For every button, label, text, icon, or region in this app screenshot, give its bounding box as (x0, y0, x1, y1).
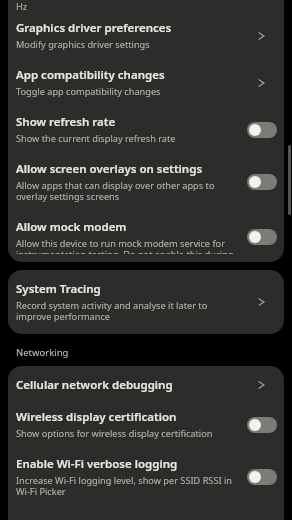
other: Open System Tracing (255, 295, 269, 309)
other: Open graphics driver preferences (255, 29, 269, 43)
staticText: Record system activity and analyse it la… (16, 299, 239, 323)
staticText: Toggle app compatibility changes (16, 85, 161, 98)
staticText: Graphics driver preferences (16, 20, 172, 36)
staticText: Wireless display certification (16, 409, 177, 425)
button[interactable]: System Tracing (8, 270, 284, 334)
staticText: Allow apps that can display over other a… (16, 179, 239, 203)
staticText: Show refresh rate (16, 114, 116, 130)
staticText: App compatibility changes (16, 67, 165, 83)
staticText: Show the current display refresh rate (16, 132, 176, 145)
staticText: Allow screen overlays on settings (16, 161, 203, 177)
other: Open cellular network debugging (255, 378, 269, 392)
button[interactable]: Show refresh rate (8, 106, 284, 153)
other: Open app compatibility changes (255, 76, 269, 90)
staticText: Cellular network debugging (16, 377, 173, 393)
button[interactable]: Off (247, 229, 277, 245)
button[interactable]: Wireless display certification (8, 402, 284, 448)
button[interactable]: Off (247, 417, 277, 433)
staticText: Enable Wi-Fi verbose logging (16, 456, 178, 472)
staticText: Hz (16, 0, 28, 12)
button[interactable]: App compatibility changes (8, 59, 284, 106)
staticText: Allow mock modem (16, 219, 127, 235)
staticText: Networking (16, 346, 69, 359)
button[interactable]: Allow mock modem (8, 211, 284, 262)
staticText: System Tracing (16, 281, 101, 297)
staticText: Increase Wi-Fi logging level, show per S… (16, 474, 239, 498)
button[interactable]: Off (247, 174, 277, 190)
staticText: Allow this device to run mock modem serv… (16, 237, 239, 254)
button[interactable]: Graphics driver preferences (8, 12, 284, 59)
button[interactable]: Off (247, 469, 277, 485)
button[interactable]: Enable Wi-Fi verbose logging (8, 448, 284, 506)
button[interactable]: Cellular network debugging (8, 366, 284, 402)
staticText: Show options for wireless display certif… (16, 427, 213, 440)
button[interactable]: Allow screen overlays on settings (8, 153, 284, 211)
staticText: Modify graphics driver settings (16, 38, 150, 51)
button[interactable]: Off (247, 122, 277, 138)
